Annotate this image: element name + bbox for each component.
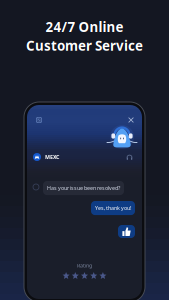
staticText: Rating bbox=[77, 262, 92, 269]
staticText: MEXC bbox=[45, 153, 59, 161]
button[interactable]: Apps bbox=[36, 117, 42, 123]
button[interactable]: Close bbox=[128, 117, 134, 123]
staticText: Yes, thank you! bbox=[95, 204, 131, 212]
staticText: 24/7 Online bbox=[45, 18, 123, 36]
button[interactable]: Thumbs up bbox=[118, 225, 135, 238]
staticText: Customer Service bbox=[26, 37, 143, 54]
staticText: Has your issue been resolved? bbox=[47, 184, 120, 192]
